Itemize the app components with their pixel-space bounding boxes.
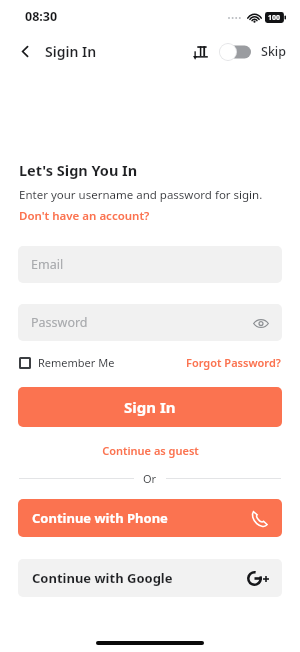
button[interactable]: Continue as guest [96, 441, 205, 460]
button[interactable]: Show password [249, 311, 273, 335]
button[interactable]: Continue with Phone [18, 499, 282, 537]
button[interactable]: Skip [259, 39, 288, 64]
staticText: Don't have an account? [19, 208, 150, 224]
button[interactable]: Don't have an account? [19, 208, 150, 224]
staticText: Sigin In [45, 42, 97, 61]
button[interactable]: Toggle [219, 43, 251, 61]
staticText: Or [143, 471, 157, 486]
staticText: Continue with Phone [32, 509, 168, 527]
staticText: Continue as guest [102, 443, 199, 458]
staticText: Email [31, 256, 64, 273]
staticText: Forgot Password? [186, 355, 281, 370]
staticText: Password [31, 314, 88, 331]
button[interactable]: Password [18, 304, 282, 341]
button[interactable]: Back [12, 38, 38, 64]
button[interactable]: Forgot Password? [186, 355, 281, 370]
button[interactable]: Remember Me [19, 355, 115, 370]
staticText: Let's Sign You In [19, 160, 138, 180]
staticText: Skip [261, 43, 286, 60]
button[interactable]: Continue with Google [18, 559, 282, 597]
button[interactable]: Text direction [189, 40, 213, 64]
staticText: Continue with Google [32, 569, 173, 587]
staticText: 100 [268, 13, 281, 23]
button[interactable]: Email [18, 246, 282, 283]
button[interactable]: Sign In [18, 387, 282, 427]
staticText: Enter your username and password for sig… [19, 187, 263, 203]
staticText: 08:30 [25, 8, 58, 25]
staticText: Remember Me [38, 355, 115, 370]
staticText: Sign In [124, 397, 176, 417]
